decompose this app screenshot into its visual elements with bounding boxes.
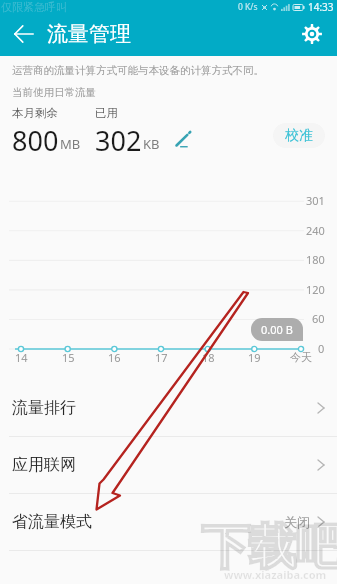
staticText: 省流量模式 [12,512,92,532]
staticText: 仅限紧急呼叫 [1,0,67,14]
staticText: 14:33 [308,0,334,14]
staticText: www.xiazaiba.com [224,567,327,582]
staticText: KB [143,135,160,153]
staticText: 本月剩余 [12,106,58,120]
staticText: 302 [95,122,142,159]
staticText: 今天 [290,350,312,364]
button[interactable]: 编辑 [173,129,193,149]
staticText: 0 K/s [238,1,258,13]
button[interactable]: 流量排行 [0,380,337,437]
staticText: 60 [312,311,325,326]
button[interactable]: 设置 [289,14,335,54]
staticText: 校准 [285,127,313,145]
staticText: 下载吧 [202,518,337,577]
staticText: 19 [248,350,261,365]
button[interactable]: 返回 [0,14,47,54]
staticText: 301 [306,193,325,208]
staticText: 当前使用日常流量 [12,86,96,99]
staticText: 运营商的流量计算方式可能与本设备的计算方式不同。 [12,64,264,77]
button[interactable]: 应用联网 [0,437,337,494]
staticText: 0.00 B [261,322,293,337]
staticText: 120 [306,282,325,297]
staticText: 已用 [95,106,118,120]
staticText: 16 [108,350,121,365]
staticText: 180 [306,252,325,267]
staticText: 240 [306,223,325,238]
staticText: 0 [318,341,325,356]
staticText: 流量管理 [47,21,131,47]
staticText: 15 [62,350,75,365]
staticText: 14 [15,350,28,365]
staticText: 流量排行 [12,398,76,418]
staticText: 17 [155,350,168,365]
staticText: 18 [202,350,215,365]
staticText: 关闭 [284,514,310,530]
button[interactable]: 省流量模式 [0,494,337,551]
staticText: 应用联网 [12,455,76,475]
staticText: 800 [12,122,59,159]
button[interactable]: 校准 [273,123,325,148]
staticText: MB [60,135,81,153]
